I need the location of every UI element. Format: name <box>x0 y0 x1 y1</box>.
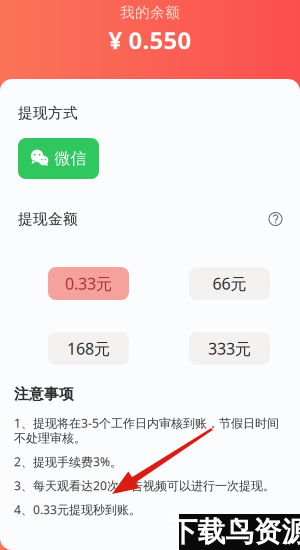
staticText: 1、提现将在3-5个工作日内审核到账，节假日时间不处理审核。 <box>14 415 279 446</box>
button[interactable]: 333元 <box>189 332 270 365</box>
staticText: 注意事项 <box>14 385 74 403</box>
button[interactable]: 66元 <box>189 267 270 300</box>
staticText: 333元 <box>208 338 251 359</box>
staticText: 下载鸟资源 <box>169 515 300 549</box>
staticText: 66元 <box>212 273 246 294</box>
staticText: 我的余额 <box>120 3 180 21</box>
staticText: 微信 <box>54 149 86 168</box>
staticText: 4、0.33元提现秒到账。 <box>14 502 141 517</box>
staticText: ¥ 0.550 <box>108 24 191 56</box>
staticText: 2、提现手续费3%。 <box>14 454 122 470</box>
staticText: 3、每天观看达20次广告视频可以进行一次提现。 <box>14 478 275 494</box>
button[interactable]: 微信 <box>18 138 99 179</box>
staticText: 168元 <box>67 338 110 359</box>
button[interactable]: 168元 <box>48 332 129 365</box>
button[interactable]: 帮助 <box>269 212 282 225</box>
staticText: 提现方式 <box>18 104 78 122</box>
staticText: 0.33元 <box>65 273 112 294</box>
button[interactable]: 0.33元 <box>48 267 129 300</box>
staticText: 提现金额 <box>18 210 78 228</box>
